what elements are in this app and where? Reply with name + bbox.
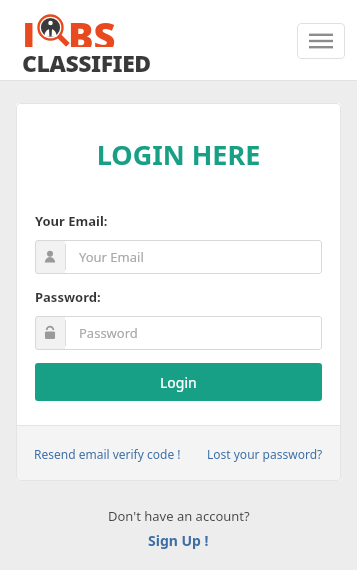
- staticText: Login: [160, 373, 197, 392]
- staticText: Resend email verify code !: [34, 446, 181, 462]
- button[interactable]: Sign Up !: [148, 531, 209, 550]
- staticText: J: [22, 10, 36, 47]
- staticText: LOGIN HERE: [35, 136, 322, 173]
- staticText: Your Email:: [35, 212, 108, 230]
- staticText: Password:: [35, 288, 101, 306]
- staticText: Password: [79, 324, 138, 342]
- button[interactable]: Resend email verify code !: [34, 446, 181, 462]
- button[interactable]: Lost your password?: [207, 446, 323, 462]
- staticText: Sign Up !: [148, 531, 209, 550]
- staticText: CLASSIFIED: [22, 47, 151, 72]
- button[interactable]: Password: [35, 316, 322, 350]
- button[interactable]: Jobs Classified home: [22, 10, 180, 72]
- staticText: Lost your password?: [207, 446, 323, 462]
- staticText: Don't have an account?: [108, 507, 250, 525]
- button[interactable]: Your Email: [35, 240, 322, 274]
- button[interactable]: Login: [35, 363, 322, 401]
- staticText: Your Email: [79, 248, 144, 266]
- button[interactable]: Open menu: [297, 23, 345, 59]
- staticText: BS: [68, 10, 116, 47]
